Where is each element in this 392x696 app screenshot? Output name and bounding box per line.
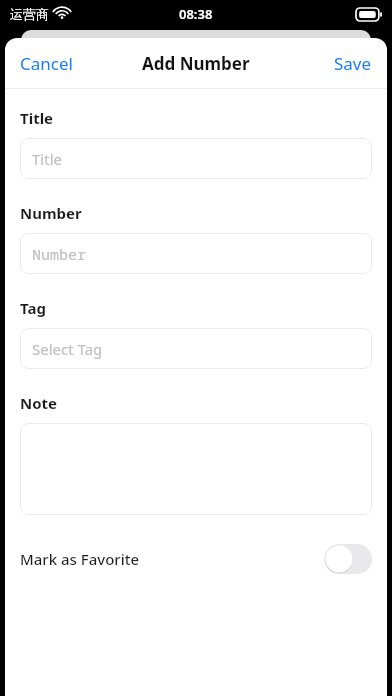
staticText: Number bbox=[20, 203, 82, 223]
staticText: Cancel bbox=[20, 52, 73, 75]
button[interactable]: Title bbox=[20, 138, 372, 179]
button[interactable]: Cancel bbox=[5, 46, 88, 81]
staticText: Tag bbox=[20, 298, 46, 318]
staticText: 运营商 bbox=[10, 6, 49, 22]
button[interactable]: Save bbox=[319, 46, 387, 81]
button[interactable]: Mark as Favorite toggle bbox=[324, 544, 372, 574]
button[interactable]: Number bbox=[20, 233, 372, 274]
staticText: Note bbox=[20, 393, 58, 413]
button[interactable] bbox=[20, 423, 372, 515]
staticText: Title bbox=[20, 108, 54, 128]
staticText: Mark as Favorite bbox=[20, 549, 324, 569]
button[interactable]: Mark as Favorite bbox=[20, 541, 372, 577]
staticText: Number bbox=[32, 244, 87, 264]
button[interactable]: Select Tag bbox=[20, 328, 372, 369]
staticText: Save bbox=[334, 52, 372, 75]
staticText: Add Number bbox=[142, 52, 250, 75]
staticText: Select Tag bbox=[32, 339, 103, 359]
staticText: Title bbox=[32, 149, 62, 169]
staticText: 08:38 bbox=[179, 5, 213, 23]
